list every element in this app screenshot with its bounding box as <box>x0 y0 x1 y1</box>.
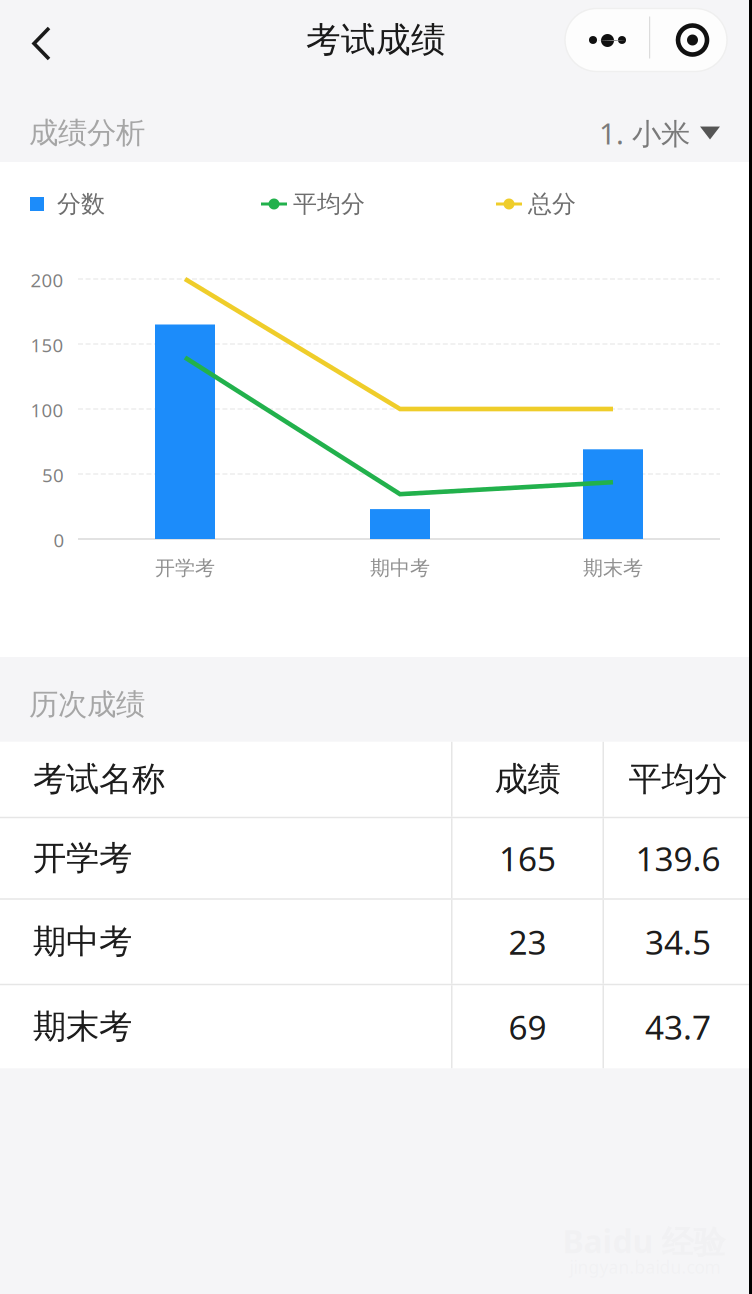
staticText: 平均分 <box>293 189 365 219</box>
staticText: 34.5 <box>645 920 711 964</box>
staticText: 成绩 <box>494 759 560 800</box>
staticText: 200 <box>30 268 63 292</box>
staticText: 50 <box>42 463 64 487</box>
staticText: 考试成绩 <box>306 19 446 61</box>
button[interactable]: 1. 小米 <box>599 113 720 152</box>
staticText: 总分 <box>528 189 576 219</box>
staticText: 开学考 <box>33 838 132 879</box>
staticText: 平均分 <box>628 759 727 800</box>
staticText: 考试名称 <box>33 759 165 800</box>
staticText: 成绩分析 <box>29 115 145 151</box>
staticText: 23 <box>508 920 546 964</box>
staticText: 开学考 <box>155 556 215 580</box>
button[interactable]: 关闭 <box>654 8 731 71</box>
button[interactable]: 更多 <box>565 8 649 71</box>
button[interactable]: 返回 <box>0 0 80 80</box>
staticText: 期末考 <box>33 1006 132 1047</box>
staticText: 165 <box>499 836 556 880</box>
staticText: 1. 小米 <box>599 113 690 152</box>
staticText: 150 <box>30 333 63 357</box>
staticText: 期中考 <box>33 921 132 962</box>
staticText: 100 <box>30 398 63 422</box>
staticText: 139.6 <box>635 836 720 880</box>
staticText: 期中考 <box>370 556 430 580</box>
staticText: 期末考 <box>583 556 643 580</box>
staticText: 43.7 <box>645 1005 711 1049</box>
staticText: 69 <box>508 1005 546 1049</box>
staticText: 历次成绩 <box>29 686 145 722</box>
staticText: 0 <box>53 528 64 552</box>
staticText: 分数 <box>57 189 105 219</box>
